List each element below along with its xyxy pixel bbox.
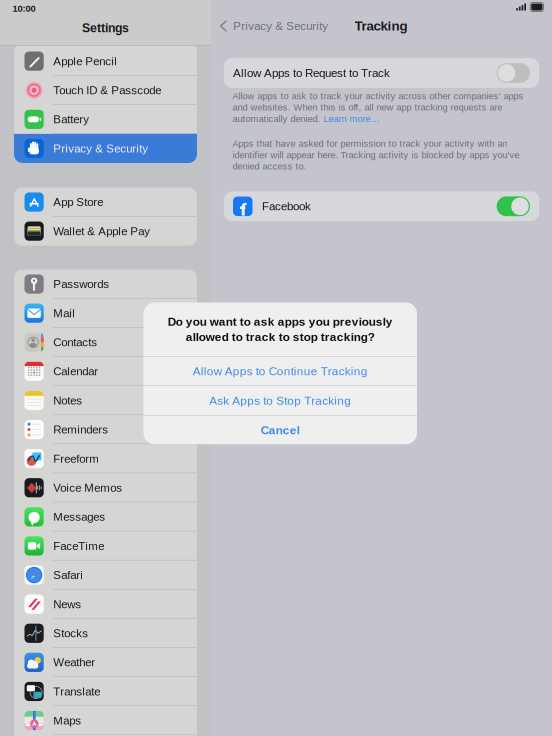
staticText: Messages xyxy=(53,510,105,523)
button[interactable]: Privacy & Security xyxy=(14,134,197,163)
staticText: Contacts xyxy=(53,336,97,349)
button[interactable]: News xyxy=(14,590,197,619)
staticText: Notes xyxy=(53,394,82,407)
button[interactable]: Contacts xyxy=(14,328,197,357)
button[interactable]: Apple Pencil xyxy=(14,43,197,76)
staticText: Battery xyxy=(53,113,89,126)
staticText: FaceTime xyxy=(53,539,104,552)
staticText: Tracking xyxy=(354,19,407,33)
staticText: Privacy & Security xyxy=(233,20,328,32)
button[interactable]: Voice Memos xyxy=(14,473,197,502)
staticText: identifier will appear here. Tracking ac… xyxy=(232,150,519,160)
button[interactable]: Translate xyxy=(14,677,197,706)
staticText: Apple Pencil xyxy=(53,55,117,67)
staticText: Safari xyxy=(53,569,83,581)
staticText: Stocks xyxy=(53,627,88,640)
staticText: Cancel xyxy=(261,423,300,437)
staticText: denied access to. xyxy=(232,161,306,171)
button[interactable]: Wallet & Apple Pay xyxy=(14,217,197,246)
button[interactable]: FaceTime xyxy=(14,531,197,560)
button[interactable]: Touch ID & Passcode xyxy=(14,76,197,105)
staticText: Freeform xyxy=(53,452,99,465)
staticText: and websites. When this is off, all new … xyxy=(232,102,502,112)
staticText: Mail xyxy=(53,307,75,319)
button[interactable]: Safari xyxy=(14,560,197,590)
staticText: Touch ID & Passcode xyxy=(53,84,161,97)
staticText: Voice Memos xyxy=(53,481,122,494)
staticText: Allow Apps to Request to Track xyxy=(233,66,390,79)
staticText: Calendar xyxy=(53,365,98,378)
staticText: App Store xyxy=(53,196,103,208)
button[interactable]: Battery xyxy=(14,105,197,134)
staticText: automatically denied. xyxy=(232,113,323,124)
button[interactable]: App Store xyxy=(14,187,197,217)
button[interactable]: Privacy & Security xyxy=(211,14,328,38)
staticText: Translate xyxy=(53,685,100,698)
staticText: Allow apps to ask to track your activity… xyxy=(232,91,523,101)
button[interactable]: Cancel xyxy=(143,416,417,444)
button[interactable]: Ask Apps to Stop Tracking xyxy=(143,386,417,415)
button[interactable]: Reminders xyxy=(14,415,197,444)
button[interactable]: Learn more… xyxy=(323,114,379,123)
staticText: Privacy & Security xyxy=(53,142,148,155)
button[interactable]: Calendar xyxy=(14,357,197,386)
staticText: allowed to track to stop tracking? xyxy=(186,330,375,344)
staticText: Reminders xyxy=(53,423,108,436)
button[interactable]: Passwords xyxy=(14,269,197,299)
button[interactable]: Notes xyxy=(14,386,197,415)
button[interactable]: Mail xyxy=(14,299,197,328)
staticText: Maps xyxy=(53,714,81,727)
button[interactable]: Freeform xyxy=(14,444,197,473)
button[interactable]: Maps xyxy=(14,706,197,735)
button[interactable]: Messages xyxy=(14,502,197,531)
staticText: Facebook xyxy=(262,200,311,213)
staticText: Do you want to ask apps you previously xyxy=(168,315,393,328)
button[interactable]: Weather xyxy=(14,648,197,677)
button[interactable]: Allow Apps to Continue Tracking xyxy=(143,357,417,385)
staticText: Settings xyxy=(82,21,129,35)
staticText: News xyxy=(53,598,81,610)
staticText: Ask Apps to Stop Tracking xyxy=(209,394,351,407)
staticText: Wallet & Apple Pay xyxy=(53,225,150,237)
staticText: Passwords xyxy=(53,278,109,290)
button[interactable]: Stocks xyxy=(14,619,197,648)
staticText: Weather xyxy=(53,656,95,669)
staticText: Learn more… xyxy=(323,113,379,124)
staticText: 10:00 xyxy=(12,3,35,14)
staticText: Apps that have asked for permission to t… xyxy=(232,138,507,149)
staticText: Allow Apps to Continue Tracking xyxy=(193,365,368,378)
